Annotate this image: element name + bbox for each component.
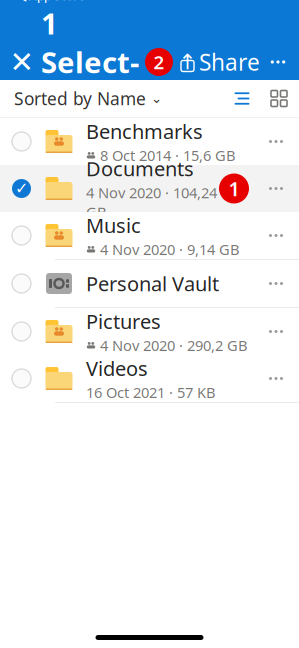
staticText: ⌄ xyxy=(151,91,162,106)
button[interactable]: Close xyxy=(6,45,38,79)
staticText: 1 Selected xyxy=(41,3,139,120)
staticText: ✓ xyxy=(15,179,28,198)
button[interactable]: List view xyxy=(225,82,259,114)
button[interactable]: Pictures xyxy=(0,308,299,355)
button[interactable]: More options xyxy=(262,45,294,79)
button[interactable]: Sorted by Name xyxy=(14,79,162,118)
staticText: ◀ App Store xyxy=(17,0,85,3)
button[interactable]: ✓ xyxy=(0,165,299,212)
staticText: Benchmarks xyxy=(86,118,203,145)
staticText: Music xyxy=(86,212,141,239)
staticText: 16 Oct 2021 · 57 KB xyxy=(86,382,216,402)
staticText: ✕ xyxy=(9,45,34,79)
button[interactable]: Benchmarks xyxy=(0,118,299,165)
staticText: Sorted by Name xyxy=(14,87,146,110)
staticText: 1 xyxy=(228,175,239,202)
staticText: 8 Oct 2014 · 15,6 GB xyxy=(100,145,236,165)
staticText: Documents xyxy=(86,155,194,182)
button[interactable]: Videos xyxy=(0,355,299,402)
staticText: Share xyxy=(199,47,260,77)
button[interactable]: Grid view xyxy=(259,82,299,114)
staticText: Personal Vault xyxy=(86,270,219,297)
staticText: Videos xyxy=(86,355,148,382)
staticText: 2 xyxy=(153,50,164,74)
staticText: 4 Nov 2020 · 9,14 GB xyxy=(100,239,240,259)
button[interactable]: ↑ xyxy=(178,45,262,79)
button[interactable]: Personal Vault xyxy=(0,260,299,307)
staticText: 4 Nov 2020 · 290,2 GB xyxy=(100,335,248,355)
staticText: Pictures xyxy=(86,308,161,335)
staticText: 4 Nov 2020 · 104,24 GB xyxy=(86,183,217,222)
staticText: ↑ xyxy=(178,50,196,74)
button[interactable]: Music xyxy=(0,212,299,259)
